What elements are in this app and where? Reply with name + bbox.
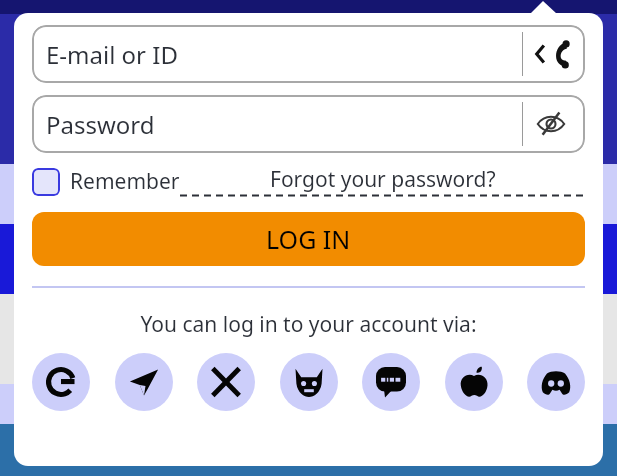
staticText: You can log in to your account via: (32, 310, 585, 339)
button[interactable]: Remember (32, 167, 180, 196)
button[interactable]: E-mail or ID (32, 25, 585, 83)
staticText: Remember (70, 167, 180, 196)
staticText: E-mail or ID (46, 38, 178, 71)
button[interactable]: Show password (523, 98, 579, 150)
button[interactable]: LOG IN (32, 212, 585, 266)
staticText: LOG IN (266, 222, 351, 256)
button[interactable]: Sign in with Discord (527, 353, 585, 411)
button[interactable]: Password (32, 95, 585, 153)
button[interactable]: Forgot your password? (180, 165, 585, 198)
button[interactable]: Sign in with MetaMask (280, 353, 338, 411)
staticText: Password (46, 108, 155, 141)
button[interactable]: Choose phone country code (523, 28, 579, 80)
button[interactable]: Sign in with Apple (445, 353, 503, 411)
button[interactable]: Sign in with Telegram (115, 353, 173, 411)
button[interactable]: Sign in with X (197, 353, 255, 411)
staticText: Forgot your password? (270, 165, 496, 194)
button[interactable]: Sign in with LINE (362, 353, 420, 411)
button[interactable]: Sign in with Google (32, 353, 90, 411)
